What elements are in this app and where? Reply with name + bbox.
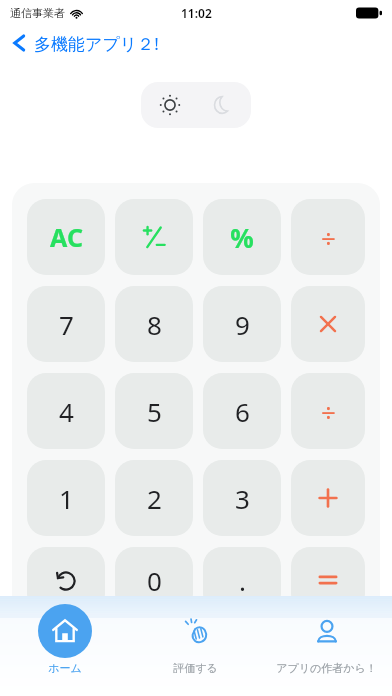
button[interactable] bbox=[291, 460, 365, 536]
staticText: 2 bbox=[147, 481, 162, 516]
staticText: ホーム bbox=[48, 661, 82, 675]
staticText: 0 bbox=[147, 563, 162, 598]
button[interactable]: Undo bbox=[27, 547, 105, 613]
button[interactable]: アプリの作者から！ bbox=[261, 602, 392, 675]
staticText: 評価する bbox=[173, 661, 218, 675]
button[interactable]: ÷ bbox=[291, 373, 365, 449]
staticText: . bbox=[239, 563, 246, 598]
other: Back bbox=[12, 32, 27, 54]
staticText: AC bbox=[50, 220, 83, 254]
staticText: 8 bbox=[147, 307, 162, 342]
button[interactable]: ÷ bbox=[291, 199, 365, 275]
button[interactable] bbox=[115, 199, 193, 275]
button[interactable]: 5 bbox=[115, 373, 193, 449]
button[interactable]: 0 bbox=[115, 547, 193, 613]
staticText: 9 bbox=[235, 307, 250, 342]
button[interactable]: 7 bbox=[27, 286, 105, 362]
staticText: アプリの作者から！ bbox=[276, 661, 377, 675]
button[interactable]: 4 bbox=[27, 373, 105, 449]
staticText: 11:02 bbox=[181, 5, 212, 21]
button[interactable]: Light theme bbox=[148, 83, 192, 127]
staticText: 1 bbox=[59, 481, 74, 516]
button[interactable]: 評価する bbox=[130, 602, 261, 675]
button[interactable] bbox=[291, 286, 365, 362]
staticText: % bbox=[230, 220, 254, 255]
staticText: ÷ bbox=[321, 220, 336, 255]
button[interactable]: 2 bbox=[115, 460, 193, 536]
button[interactable]: 1 bbox=[27, 460, 105, 536]
button[interactable]: % bbox=[203, 199, 281, 275]
staticText: 5 bbox=[147, 394, 162, 429]
button[interactable] bbox=[291, 547, 365, 613]
staticText: ÷ bbox=[321, 394, 336, 429]
staticText: 7 bbox=[59, 307, 74, 342]
button[interactable]: 8 bbox=[115, 286, 193, 362]
button[interactable]: 6 bbox=[203, 373, 281, 449]
staticText: 6 bbox=[235, 394, 250, 429]
button[interactable]: . bbox=[203, 547, 281, 613]
staticText: 多機能アプリ２! bbox=[34, 32, 159, 55]
staticText: 3 bbox=[235, 481, 250, 516]
button[interactable]: Back bbox=[0, 26, 392, 60]
staticText: 通信事業者 bbox=[10, 6, 65, 20]
staticText: 4 bbox=[59, 394, 74, 429]
button[interactable]: ホーム bbox=[0, 602, 130, 675]
button[interactable]: 9 bbox=[203, 286, 281, 362]
button[interactable]: AC bbox=[27, 199, 105, 275]
button[interactable]: Dark theme bbox=[200, 83, 244, 127]
button[interactable]: 3 bbox=[203, 460, 281, 536]
